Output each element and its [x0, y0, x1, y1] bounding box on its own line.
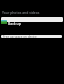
- button[interactable]: [1, 17, 63, 22]
- staticText: Your photos and videos: [2, 10, 40, 15]
- staticText: Back up: [8, 21, 21, 26]
- button[interactable]: Free up space on device: [1, 35, 62, 38]
- staticText: Free up space on device: [3, 35, 37, 38]
